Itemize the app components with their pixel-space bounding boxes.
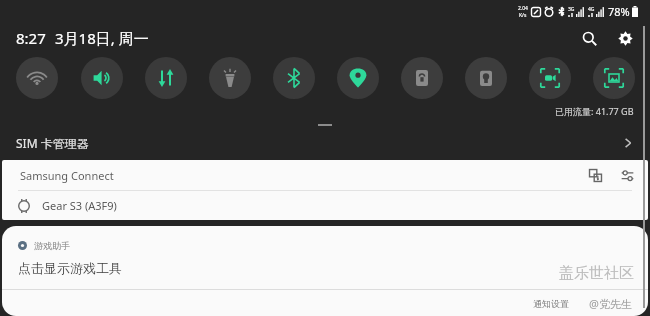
button[interactable]: SIM 卡管理器 — [0, 130, 650, 156]
button[interactable]: Secure folder — [401, 57, 443, 99]
button[interactable]: Smart capture — [593, 57, 635, 99]
staticText: 盖乐世社区 — [559, 264, 634, 283]
button[interactable]: Cast — [584, 164, 606, 186]
button[interactable]: Wi-Fi — [16, 57, 58, 99]
button[interactable]: Connect settings — [616, 164, 638, 186]
staticText: 4G — [588, 6, 595, 13]
button[interactable]: Mobile data — [145, 57, 187, 99]
staticText: 78% — [608, 4, 630, 19]
button[interactable]: Flashlight — [209, 57, 251, 99]
staticText: 游戏助手 — [34, 240, 70, 251]
button[interactable]: Settings — [610, 23, 640, 53]
button[interactable]: Search — [574, 23, 604, 53]
staticText: 3月18日, 周一 — [55, 28, 149, 48]
button[interactable]: Gear S3 (A3F9) — [2, 191, 648, 220]
staticText: @党先生 — [589, 296, 632, 311]
staticText: Samsung Connect — [20, 168, 114, 183]
button[interactable]: Privacy — [465, 57, 507, 99]
staticText: 点击显示游戏工具 — [18, 260, 122, 276]
staticText: 3G — [568, 6, 575, 13]
button[interactable]: 通知设置 — [529, 294, 573, 313]
staticText: Gear S3 (A3F9) — [42, 198, 117, 213]
staticText: K/s — [519, 12, 527, 19]
button[interactable]: Screen recorder — [529, 57, 571, 99]
staticText: SIM 卡管理器 — [16, 135, 89, 151]
staticText: 已用流量: 41.77 GB — [555, 105, 634, 117]
button[interactable]: Location — [337, 57, 379, 99]
button[interactable]: Sound — [81, 57, 123, 99]
staticText: 通知设置 — [533, 298, 569, 309]
staticText: 8:27 — [16, 28, 46, 48]
staticText: 2.04 — [518, 5, 528, 12]
button[interactable]: 游戏助手 — [2, 226, 648, 316]
button[interactable]: Bluetooth — [273, 57, 315, 99]
